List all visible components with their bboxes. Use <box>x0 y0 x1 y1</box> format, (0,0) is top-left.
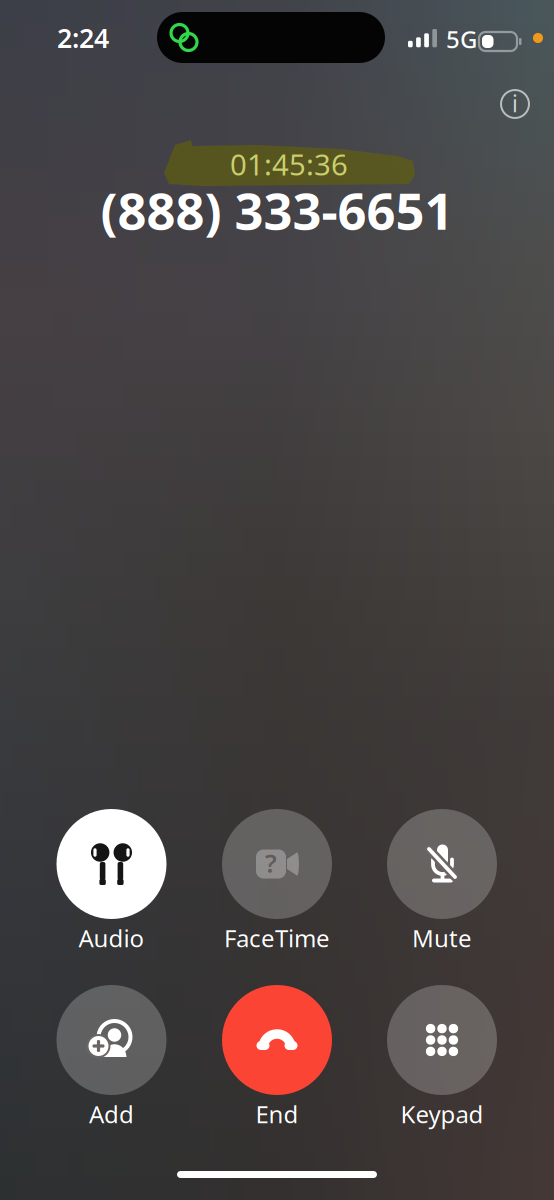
staticText: Add <box>89 1098 134 1130</box>
staticText: ? <box>265 846 277 880</box>
staticText: i <box>512 88 518 118</box>
staticText: FaceTime <box>224 922 330 954</box>
button[interactable]: Add <box>31 985 191 1130</box>
staticText: 01:45:36 <box>230 144 348 183</box>
staticText: 5G <box>446 23 477 55</box>
staticText: Audio <box>78 922 144 954</box>
button[interactable]: Keypad <box>362 985 522 1130</box>
staticText: Mute <box>412 922 472 954</box>
button[interactable]: Audio <box>31 809 191 954</box>
staticText: End <box>255 1098 298 1130</box>
staticText: Keypad <box>400 1098 483 1130</box>
staticText: (888) 333-6651 <box>100 176 453 244</box>
button[interactable]: ? <box>197 809 357 954</box>
button[interactable]: Mute <box>362 809 522 954</box>
button[interactable]: End <box>197 985 357 1130</box>
staticText: 2:24 <box>57 20 109 55</box>
button[interactable]: Call details <box>488 77 542 131</box>
